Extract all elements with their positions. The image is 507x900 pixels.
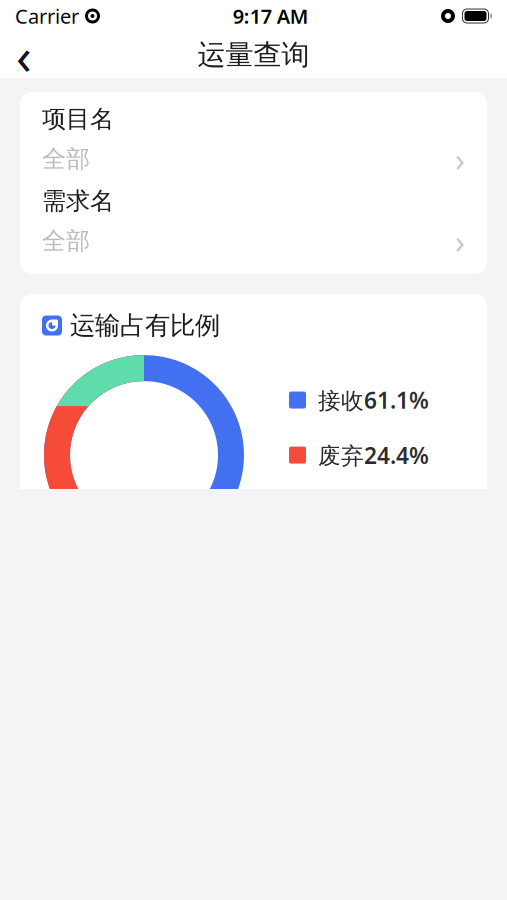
staticText: › xyxy=(455,138,465,180)
staticText: 9:17 AM xyxy=(233,3,309,29)
button[interactable]: 全部 xyxy=(42,216,465,266)
staticText: › xyxy=(455,220,465,262)
button[interactable]: Back xyxy=(0,33,48,77)
staticText: 项目名 xyxy=(42,104,114,134)
staticText: 需求名 xyxy=(42,186,114,216)
staticText: 全部 xyxy=(42,144,90,174)
staticText: 全部 xyxy=(42,226,90,256)
staticText: ‹ xyxy=(16,21,32,89)
staticText: 接收61.1% xyxy=(318,385,429,415)
button[interactable]: 全部 xyxy=(42,134,465,184)
staticText: Carrier xyxy=(15,3,79,29)
staticText: 运量查询 xyxy=(197,38,309,72)
staticText: 废弃24.4% xyxy=(318,440,429,470)
staticText: 运输占有比例 xyxy=(70,310,220,341)
